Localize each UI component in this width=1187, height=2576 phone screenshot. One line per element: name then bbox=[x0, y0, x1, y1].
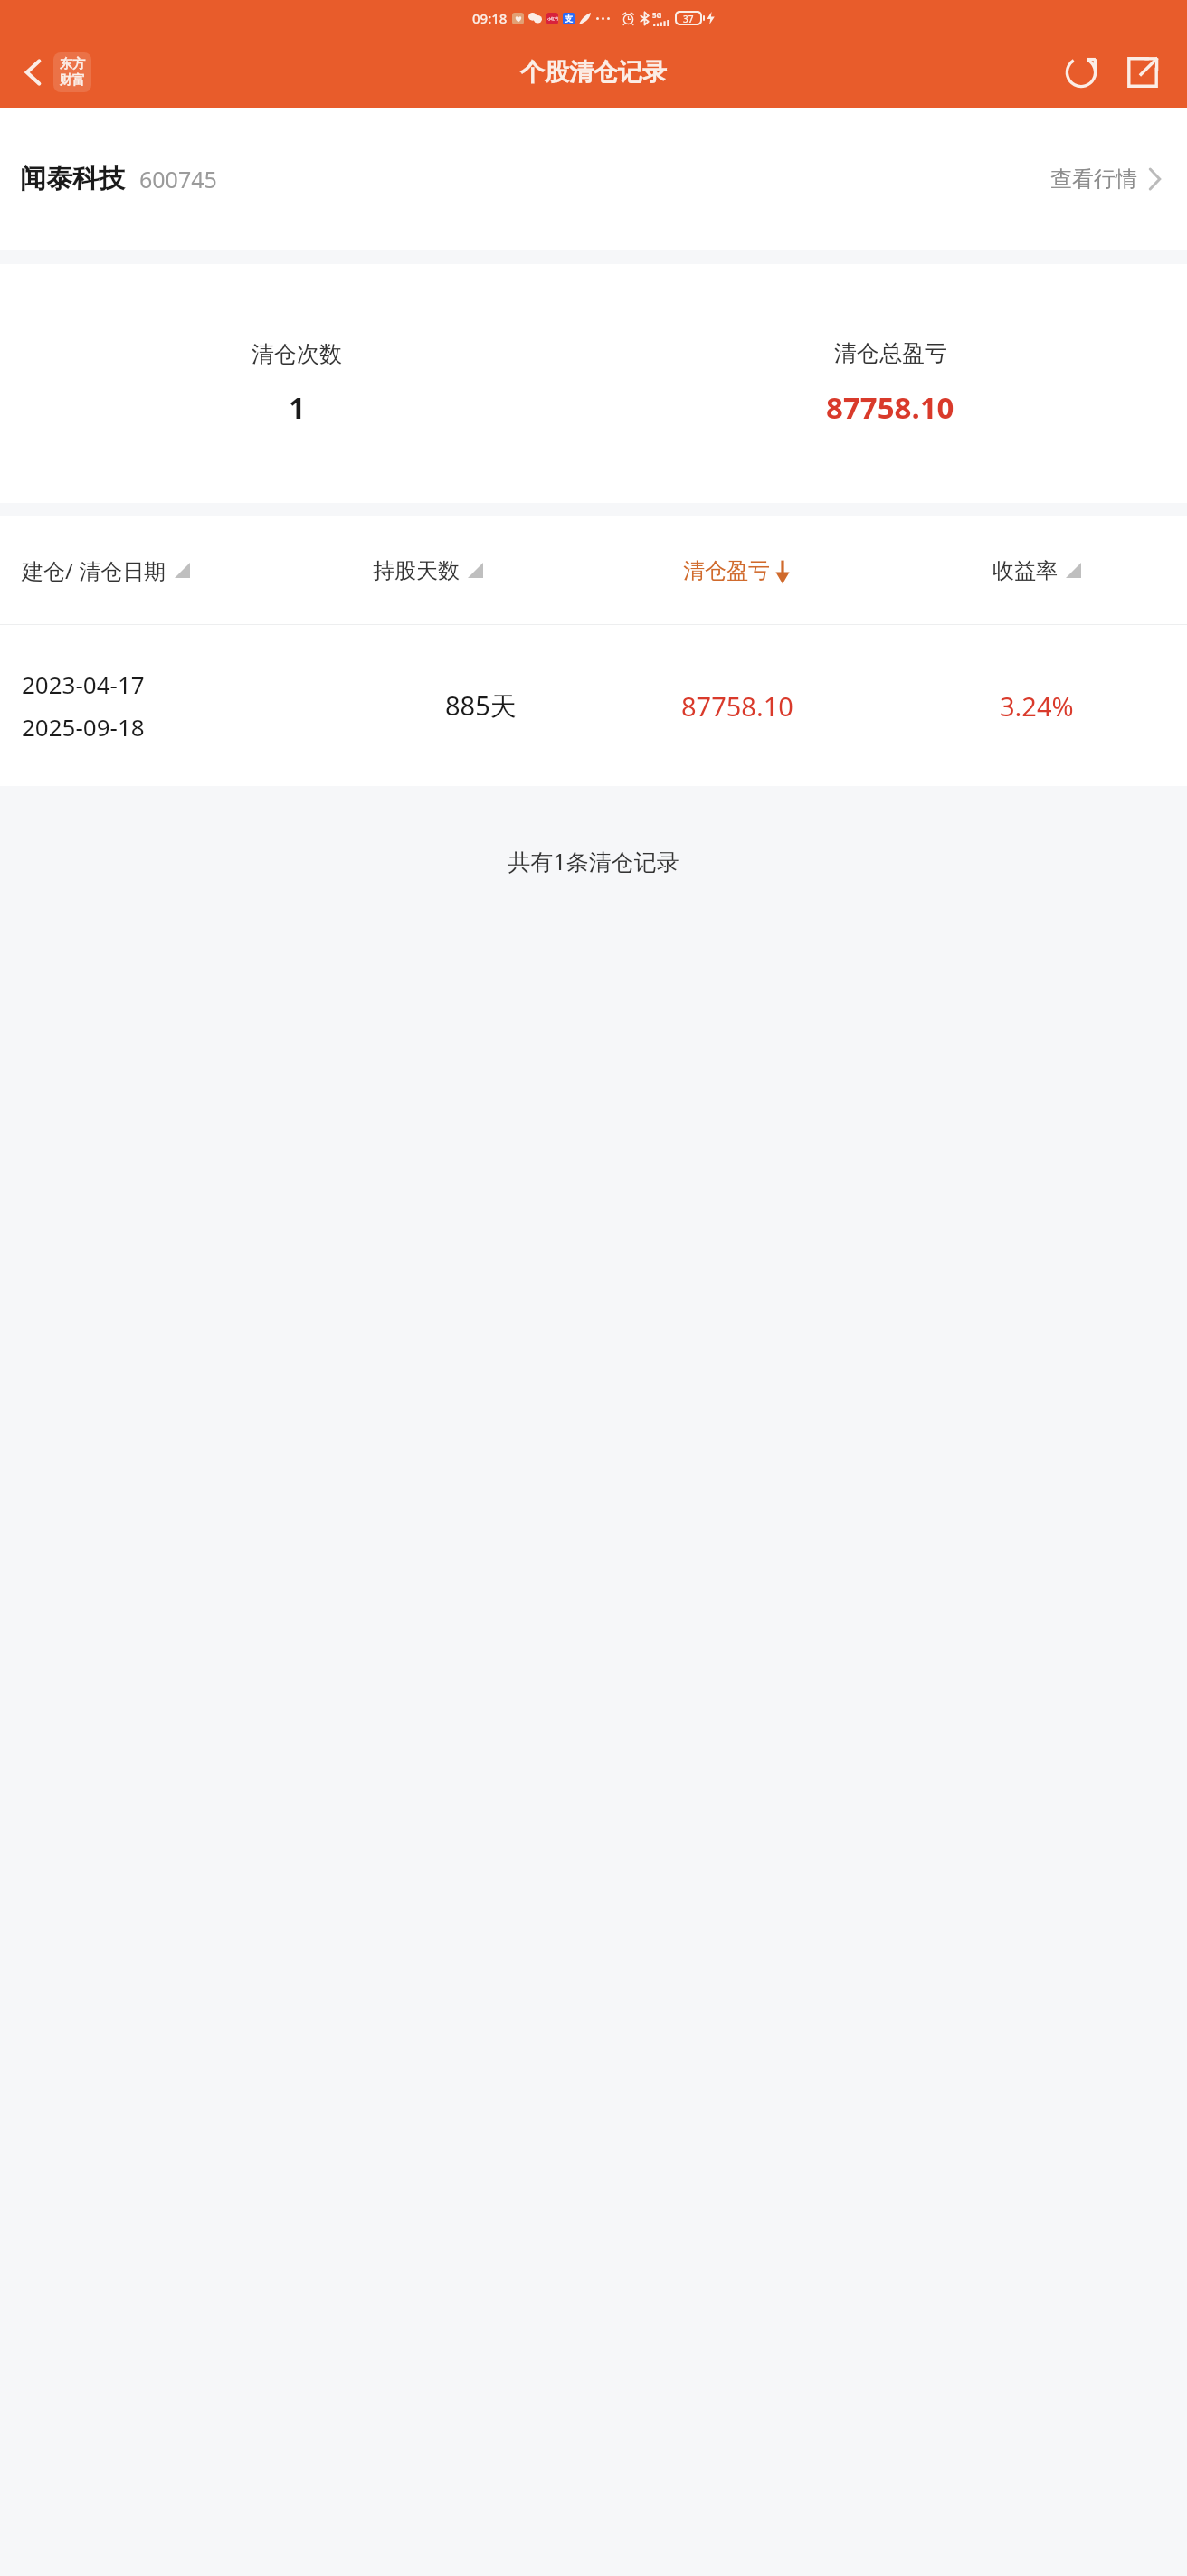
button[interactable]: 刷新 bbox=[1055, 46, 1107, 99]
staticText: 闻泰科技 bbox=[20, 162, 125, 195]
staticText: 清仓盈亏 bbox=[683, 557, 770, 584]
staticText: 小红书 bbox=[547, 16, 558, 21]
button[interactable]: 建仓/ 清仓日期 bbox=[0, 516, 373, 624]
staticText: 个股清仓记录 bbox=[520, 57, 667, 88]
staticText: 持股天数 bbox=[373, 557, 460, 584]
staticText: 885天 bbox=[445, 687, 517, 724]
button[interactable]: 清仓盈亏 bbox=[588, 516, 887, 624]
staticText: 清仓总盈亏 bbox=[834, 339, 947, 367]
button[interactable]: 持股天数 bbox=[373, 516, 588, 624]
staticText: 支 bbox=[565, 14, 573, 24]
button[interactable]: 返回 东方财富 bbox=[16, 45, 97, 99]
button[interactable]: 2023-04-17 bbox=[0, 625, 1187, 786]
staticText: 87758.10 bbox=[826, 387, 954, 428]
staticText: 财富 bbox=[60, 72, 85, 89]
staticText: 收益率 bbox=[992, 557, 1058, 584]
staticText: 600745 bbox=[139, 164, 217, 194]
staticText: 3.24% bbox=[1000, 688, 1074, 724]
staticText: 2023-04-17 bbox=[22, 668, 145, 700]
staticText: 建仓/ 清仓日期 bbox=[22, 555, 166, 585]
staticText: 清仓次数 bbox=[252, 340, 342, 368]
button[interactable]: 收益率 bbox=[887, 516, 1187, 624]
staticText: 2025-09-18 bbox=[22, 711, 145, 743]
staticText: 37 bbox=[683, 13, 694, 24]
staticText: 09:18 bbox=[472, 9, 508, 27]
button[interactable]: 分享 bbox=[1116, 46, 1169, 99]
button[interactable]: 查看行情 bbox=[1045, 160, 1167, 198]
staticText: 1 bbox=[289, 388, 306, 428]
staticText: 5G bbox=[652, 10, 662, 20]
staticText: 东方 bbox=[60, 56, 85, 72]
staticText: 共有1条清仓记录 bbox=[0, 846, 1187, 876]
staticText: 查看行情 bbox=[1050, 166, 1137, 193]
staticText: 87758.10 bbox=[681, 688, 793, 724]
